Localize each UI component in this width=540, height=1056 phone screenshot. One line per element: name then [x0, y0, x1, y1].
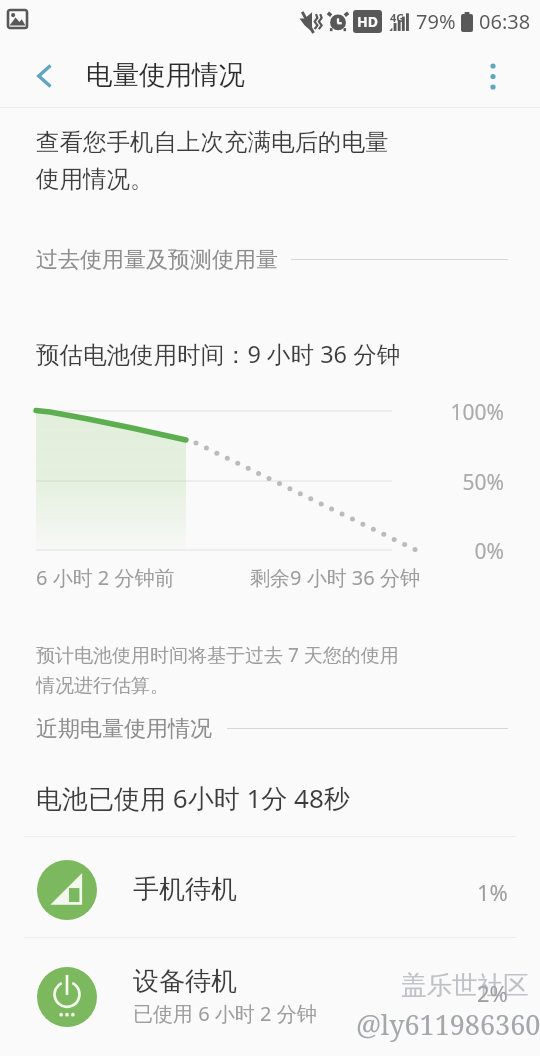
staticText: 剩余9 小时 36 分钟 [250, 564, 420, 591]
staticText: 1% [477, 877, 508, 907]
button[interactable]: 设备待机 [0, 938, 540, 1038]
staticText: @ly611986360 [356, 1006, 540, 1043]
staticText: 设备待机 [133, 965, 237, 998]
staticText: 79% [416, 8, 456, 35]
staticText: 已使用 6 小时 2 分钟 [133, 1000, 317, 1027]
staticText: 手机待机 [133, 873, 237, 906]
staticText: 预计电池使用时间将基于过去 7 天您的使用情况进行估算。 [36, 642, 402, 698]
button[interactable]: More options [465, 48, 521, 104]
staticText: 过去使用量及预测使用量 [36, 246, 278, 274]
staticText: 4G [390, 10, 405, 25]
staticText: 预估电池使用时间：9 小时 36 分钟 [36, 338, 401, 370]
staticText: 6 小时 2 分钟前 [36, 564, 175, 591]
staticText: 近期电量使用情况 [36, 715, 212, 743]
staticText: 0% [396, 537, 504, 566]
staticText: 电量使用情况 [86, 58, 245, 91]
staticText: HD [357, 12, 378, 31]
staticText: 查看您手机自上次充满电后的电量使用情况。 [36, 127, 398, 194]
staticText: 2% [477, 978, 508, 1008]
staticText: 50% [396, 468, 504, 497]
staticText: 100% [396, 398, 504, 427]
button[interactable]: 手机待机 [0, 837, 540, 937]
staticText: 06:38 [479, 8, 531, 35]
button[interactable]: Back [16, 47, 74, 105]
staticText: 电池已使用 6小时 1分 48秒 [36, 780, 350, 816]
staticText: 盖乐世社区 [401, 969, 529, 1001]
